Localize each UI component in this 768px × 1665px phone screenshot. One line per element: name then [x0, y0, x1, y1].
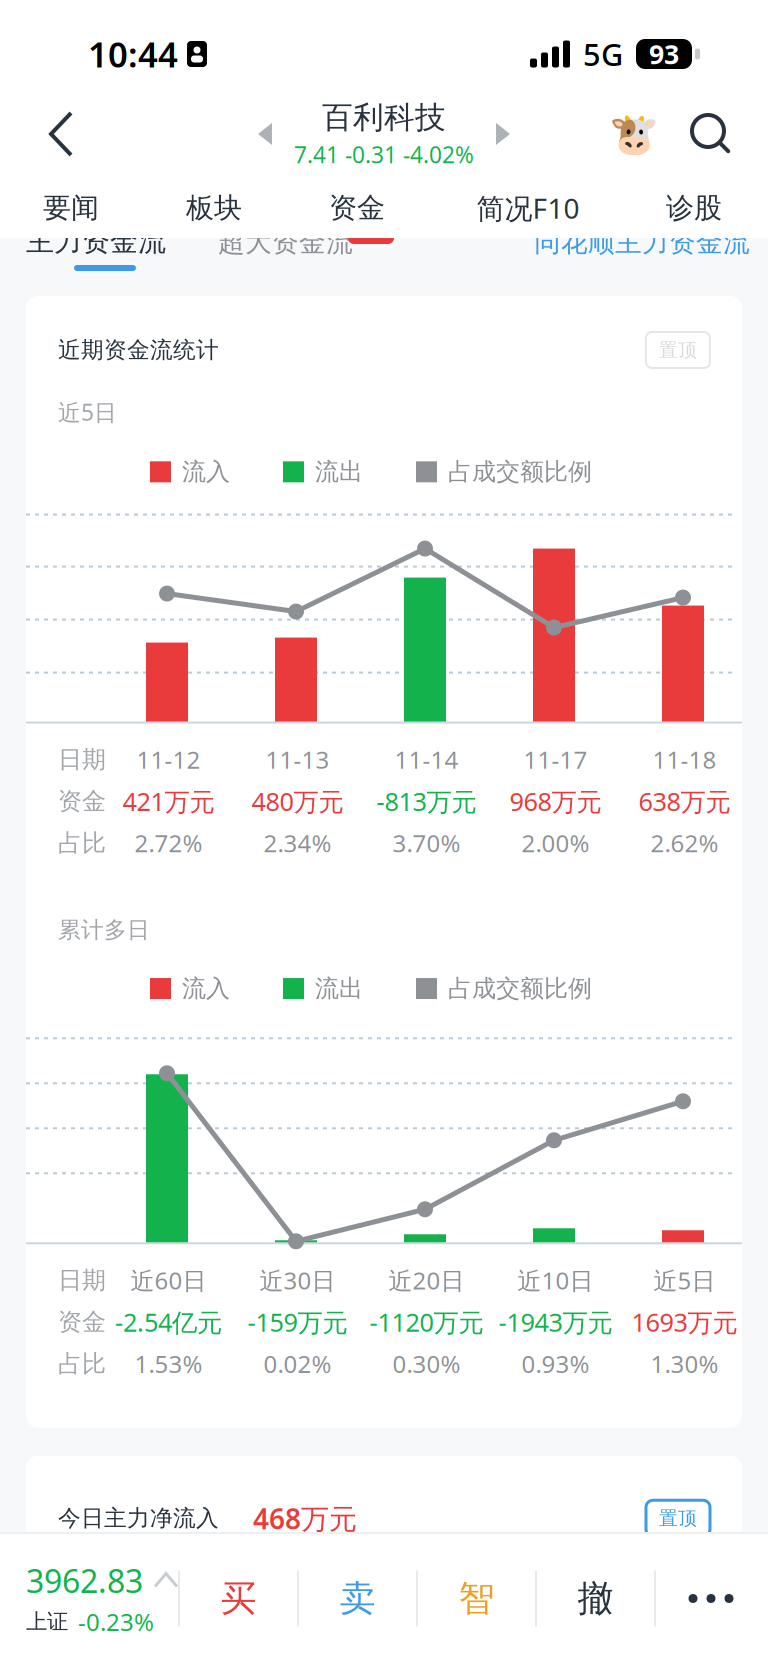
staticText: 超大资金流	[218, 226, 353, 259]
staticText: 0.02%	[263, 1348, 331, 1380]
staticText: 简况F10	[476, 189, 579, 227]
staticText: 占比	[58, 1349, 106, 1378]
staticText: 968万元	[509, 784, 601, 818]
staticText: 今日主力净流入	[58, 1504, 219, 1532]
staticText: 0.93%	[521, 1348, 589, 1380]
staticText: 5G	[583, 34, 623, 74]
staticText: 智	[458, 1576, 494, 1621]
button[interactable]: Mascot	[602, 102, 666, 166]
staticText: 近60日	[130, 1264, 206, 1296]
button[interactable]: 置顶	[646, 1500, 710, 1536]
staticText: -813万元	[376, 784, 476, 818]
staticText: 占成交额比例	[448, 457, 592, 487]
button[interactable]: 3962.83	[0, 1559, 178, 1638]
staticText: 0.30%	[392, 1348, 460, 1380]
staticText: -1120万元	[369, 1305, 483, 1339]
staticText: 11-13	[265, 744, 329, 775]
staticText: 1.53%	[134, 1348, 202, 1380]
button[interactable]: 简况F10	[453, 178, 603, 238]
button[interactable]: 同花顺主力资金流	[0, 238, 216, 271]
staticText: 3.70%	[392, 827, 460, 859]
staticText: 撤	[577, 1576, 613, 1621]
staticText: 占比	[58, 828, 106, 858]
staticText: 流入	[182, 457, 230, 487]
staticText: 置顶	[659, 338, 697, 361]
button[interactable]: 买	[180, 1576, 297, 1621]
button[interactable]: 置顶	[646, 332, 710, 368]
staticText: 买	[220, 1576, 256, 1621]
staticText: -0.23%	[78, 1606, 154, 1638]
staticText: 流出	[315, 974, 363, 1003]
staticText: 7.41 -0.31 -4.02%	[294, 139, 474, 169]
staticText: 上证	[26, 1609, 68, 1635]
staticText: 近20日	[388, 1264, 464, 1296]
staticText: 11-18	[652, 744, 716, 775]
button[interactable]: 撤	[537, 1576, 654, 1621]
staticText: 百利科技	[322, 99, 446, 136]
staticText: 要闻	[43, 191, 99, 225]
staticText: 累计多日	[58, 916, 150, 944]
staticText: 10:44	[88, 31, 178, 77]
staticText: 近5日	[653, 1264, 715, 1296]
staticText: 流入	[182, 974, 230, 1003]
staticText: 11-14	[394, 744, 458, 775]
staticText: 资金	[58, 786, 106, 816]
staticText: 日期	[58, 1265, 106, 1295]
button[interactable]: Back	[26, 98, 96, 170]
staticText: 🐮	[609, 111, 659, 157]
staticText: 2.72%	[134, 827, 202, 859]
staticText: 2.62%	[650, 827, 718, 859]
button[interactable]: 板块	[139, 178, 289, 238]
staticText: 近5日	[58, 397, 117, 427]
button[interactable]: More	[656, 1594, 766, 1603]
button[interactable]: 超大资金流	[0, 238, 135, 271]
staticText: 480万元	[251, 784, 343, 818]
staticText: 同花顺主力资金流	[534, 226, 750, 259]
staticText: 1693万元	[631, 1305, 737, 1339]
staticText: 2.00%	[521, 827, 589, 859]
staticText: 诊股	[666, 191, 722, 225]
staticText: 638万元	[638, 784, 730, 818]
staticText: -2.54亿元	[115, 1305, 222, 1339]
staticText: 流出	[315, 457, 363, 487]
button[interactable]: 主力资金流	[0, 238, 140, 272]
staticText: 2.34%	[263, 827, 331, 859]
staticText: -1943万元	[498, 1305, 612, 1339]
staticText: 421万元	[122, 784, 214, 818]
staticText: 11-12	[136, 744, 200, 775]
staticText: 3962.83	[26, 1559, 143, 1602]
button[interactable]: 诊股	[619, 178, 768, 238]
staticText: 近30日	[259, 1264, 335, 1296]
staticText: 日期	[58, 745, 106, 774]
button[interactable]: 卖	[299, 1576, 416, 1621]
button[interactable]: 要闻	[0, 178, 146, 238]
button[interactable]: Search	[680, 103, 742, 165]
staticText: 近期资金流统计	[58, 336, 219, 364]
staticText: 卖	[339, 1576, 375, 1621]
staticText: 置顶	[659, 1507, 697, 1530]
staticText: 占成交额比例	[448, 974, 592, 1003]
staticText: 近10日	[517, 1264, 593, 1296]
button[interactable]: 智	[418, 1576, 535, 1621]
staticText: 板块	[186, 191, 242, 225]
staticText: 主力资金流	[26, 224, 166, 258]
staticText: 468万元	[253, 1500, 357, 1537]
staticText: 11-17	[523, 744, 587, 775]
staticText: 资金	[58, 1307, 106, 1337]
staticText: 1.30%	[650, 1348, 718, 1380]
staticText: 资金	[329, 191, 385, 225]
staticText: -159万元	[247, 1305, 347, 1339]
button[interactable]: 资金	[282, 178, 432, 238]
staticText: 93	[649, 36, 679, 72]
